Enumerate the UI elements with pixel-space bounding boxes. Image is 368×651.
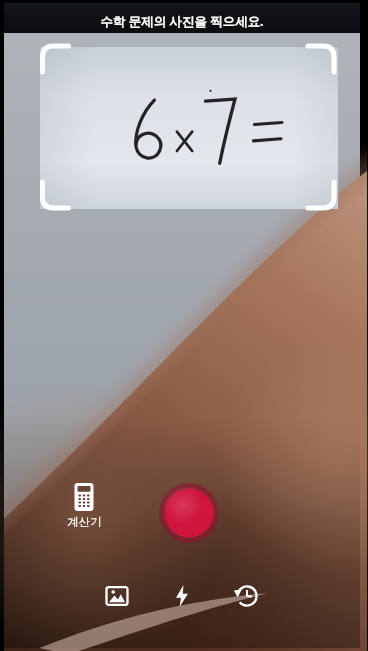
staticText: 계산기 xyxy=(67,515,102,529)
button[interactable]: Gallery xyxy=(97,576,137,616)
button[interactable]: History xyxy=(227,576,267,616)
button[interactable]: Take photo xyxy=(157,481,221,545)
button[interactable]: Flash xyxy=(162,576,202,616)
button[interactable]: 계산기 xyxy=(56,480,112,542)
staticText: 수학 문제의 사진을 찍으세요. xyxy=(100,13,264,30)
